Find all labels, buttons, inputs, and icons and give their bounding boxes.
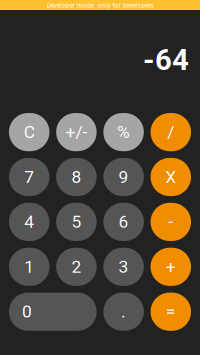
- staticText: 7: [24, 167, 34, 187]
- button[interactable]: 4: [9, 203, 49, 241]
- staticText: 3: [119, 257, 129, 277]
- staticText: -: [168, 212, 173, 232]
- button[interactable]: +/-: [56, 113, 97, 151]
- button[interactable]: X: [151, 158, 191, 196]
- staticText: 1: [24, 257, 34, 277]
- button[interactable]: C: [9, 113, 49, 151]
- button[interactable]: 7: [9, 158, 49, 196]
- button[interactable]: .: [103, 293, 144, 331]
- button[interactable]: %: [103, 113, 144, 151]
- staticText: 5: [71, 212, 81, 232]
- staticText: 6: [119, 212, 129, 232]
- staticText: 8: [71, 167, 81, 187]
- button[interactable]: 8: [56, 158, 97, 196]
- button[interactable]: =: [151, 293, 191, 331]
- staticText: Developer mode: only for developers: [46, 2, 153, 9]
- button[interactable]: -: [151, 203, 191, 241]
- button[interactable]: /: [151, 113, 191, 151]
- button[interactable]: 6: [103, 203, 144, 241]
- staticText: /: [167, 122, 174, 142]
- button[interactable]: +: [151, 248, 191, 286]
- button[interactable]: 0: [9, 293, 97, 331]
- button[interactable]: 5: [56, 203, 97, 241]
- staticText: %: [117, 122, 130, 142]
- staticText: 4: [24, 212, 34, 232]
- staticText: 0: [22, 301, 32, 322]
- staticText: X: [165, 167, 176, 187]
- staticText: +: [166, 257, 176, 277]
- staticText: 9: [119, 167, 129, 187]
- button[interactable]: 2: [56, 248, 97, 286]
- staticText: =: [166, 301, 176, 322]
- button[interactable]: 9: [103, 158, 144, 196]
- staticText: +/-: [65, 122, 87, 142]
- button[interactable]: 3: [103, 248, 144, 286]
- staticText: C: [24, 122, 35, 142]
- staticText: -64: [143, 43, 189, 77]
- button[interactable]: 1: [9, 248, 49, 286]
- staticText: 2: [71, 257, 81, 277]
- staticText: .: [121, 301, 126, 322]
